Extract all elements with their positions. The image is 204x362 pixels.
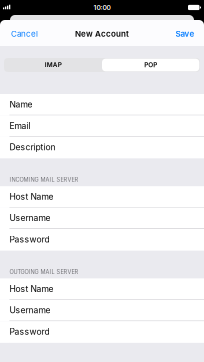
staticText: Password [9, 326, 49, 337]
staticText: Description [9, 142, 55, 152]
staticText: 10:00 [93, 3, 110, 12]
staticText: OUTGOING MAIL SERVER [9, 269, 78, 275]
staticText: Name [9, 99, 32, 109]
staticText: Save [175, 29, 194, 39]
staticText: Email [9, 121, 30, 131]
staticText: POP [144, 61, 157, 69]
button[interactable]: IMAP [5, 59, 102, 71]
button[interactable]: Username [0, 300, 204, 321]
staticText: Host Name [9, 191, 53, 202]
staticText: New Account [75, 29, 129, 39]
staticText: IMAP [45, 61, 62, 69]
staticText: Username [9, 305, 50, 315]
button[interactable]: Username [0, 208, 204, 229]
button[interactable]: Description [0, 137, 204, 158]
staticText: INCOMING MAIL SERVER [9, 176, 78, 183]
button[interactable]: Email [0, 115, 204, 137]
button[interactable]: Name [0, 94, 204, 115]
button[interactable]: Save [175, 21, 204, 45]
button[interactable]: POP [102, 59, 199, 71]
button[interactable]: Cancel [0, 21, 38, 45]
staticText: Username [9, 213, 50, 223]
staticText: Cancel [11, 29, 38, 39]
button[interactable]: Password [0, 229, 204, 250]
button[interactable]: Host Name [0, 186, 204, 208]
staticText: Host Name [9, 284, 53, 294]
button[interactable]: Host Name [0, 278, 204, 300]
staticText: Password [9, 234, 49, 244]
button[interactable]: Password [0, 321, 204, 343]
